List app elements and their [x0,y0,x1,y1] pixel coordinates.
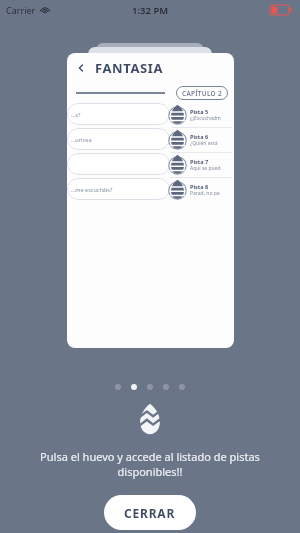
staticText: Pulsa el huevo y accede al listado de pi… [22,449,278,479]
button[interactable]: Pista 7 [168,153,234,177]
button[interactable] [115,384,121,390]
staticText: Pista 8 [190,183,209,190]
staticText: Aquí se pued [190,165,221,172]
staticText: Parad, no pa [190,190,220,197]
staticText: Carrier [6,4,36,16]
staticText: ¡¡¡Escuchadm [190,115,221,122]
button[interactable]: …uriosa [67,128,170,150]
staticText: …me escucháis? [71,186,113,193]
button[interactable]: Pista 5 [168,103,234,127]
button[interactable]: CERRAR [104,495,196,530]
button[interactable]: Pista 8 [168,178,234,202]
button[interactable]: …s? [67,103,170,125]
button[interactable] [163,384,169,390]
button[interactable] [131,384,137,390]
staticText: …s? [71,111,81,118]
button[interactable]: Back [73,60,89,76]
staticText: CAPÍTULO 2 [182,89,222,98]
button[interactable]: CAPÍTULO 2 [176,86,228,100]
button[interactable] [179,384,185,390]
staticText: FANTASIA [95,59,164,77]
staticText: ¿Quién está [190,140,218,147]
staticText: Pista 5 [190,108,209,115]
staticText: 1:32 PM [132,4,169,17]
button[interactable]: Huevo [137,403,163,435]
button[interactable] [147,384,153,390]
button[interactable] [67,153,170,175]
staticText: Pista 6 [190,133,209,140]
button[interactable]: Pista 6 [168,128,234,152]
staticText: CERRAR [124,505,176,521]
staticText: Pista 7 [190,158,209,165]
staticText: …uriosa [71,136,92,143]
button[interactable]: …me escucháis? [67,178,170,200]
